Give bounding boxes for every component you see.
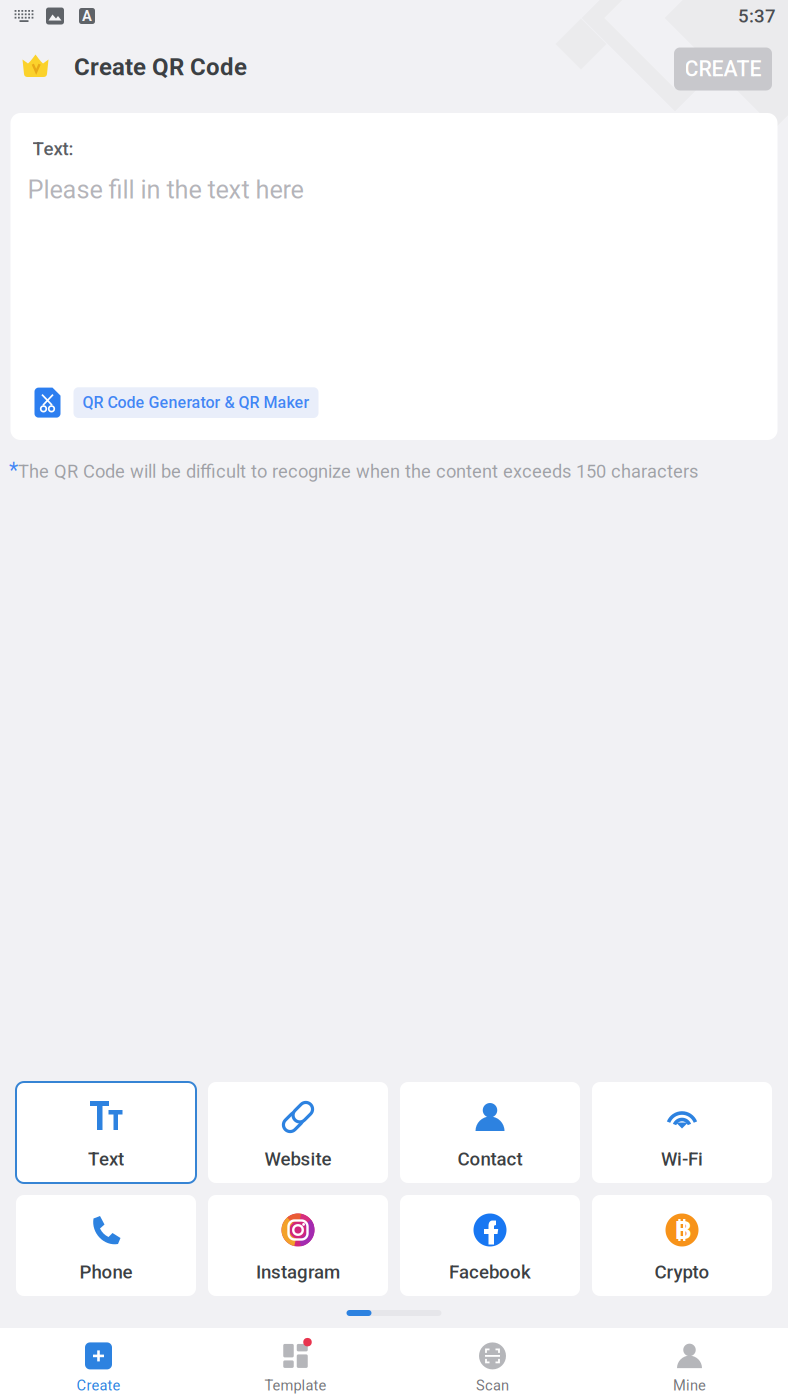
staticText: The QR Code will be difficult to recogni… — [18, 461, 698, 482]
staticText: Text: — [32, 138, 73, 160]
button[interactable]: Contact — [400, 1082, 580, 1183]
button[interactable]: CREATE — [674, 47, 772, 90]
staticText: CREATE — [684, 56, 761, 81]
button[interactable]: Mine — [591, 1328, 788, 1400]
staticText: Wi-Fi — [661, 1148, 703, 1170]
staticText: * — [9, 458, 18, 483]
button[interactable]: Website — [208, 1082, 388, 1183]
staticText: A — [82, 7, 92, 25]
staticText: B — [675, 1214, 692, 1246]
staticText: Template — [264, 1377, 326, 1394]
staticText: Please fill in the text here — [27, 175, 303, 205]
button[interactable]: Premium — [22, 52, 50, 85]
staticText: Facebook — [449, 1261, 531, 1283]
button[interactable]: Text — [16, 1082, 196, 1183]
button[interactable]: Create — [0, 1328, 197, 1400]
staticText: Scan — [476, 1377, 509, 1394]
staticText: Create QR Code — [74, 53, 247, 81]
button[interactable]: Instagram — [208, 1195, 388, 1296]
button[interactable]: B — [592, 1195, 772, 1296]
staticText: Mine — [673, 1377, 706, 1394]
staticText: QR Code Generator & QR Maker — [82, 393, 309, 412]
button[interactable]: Scan — [394, 1328, 591, 1400]
staticText: Phone — [79, 1261, 132, 1283]
staticText: 5:37 — [738, 5, 776, 27]
button[interactable]: Facebook — [400, 1195, 580, 1296]
staticText: Instagram — [256, 1261, 340, 1283]
staticText: Create — [76, 1377, 120, 1394]
staticText: Website — [264, 1148, 331, 1170]
button[interactable]: Template — [197, 1328, 394, 1400]
staticText: Crypto — [654, 1261, 709, 1283]
button[interactable]: Wi-Fi — [592, 1082, 772, 1183]
staticText: Contact — [457, 1148, 522, 1170]
button[interactable]: Phone — [16, 1195, 196, 1296]
staticText: Text — [88, 1148, 124, 1170]
